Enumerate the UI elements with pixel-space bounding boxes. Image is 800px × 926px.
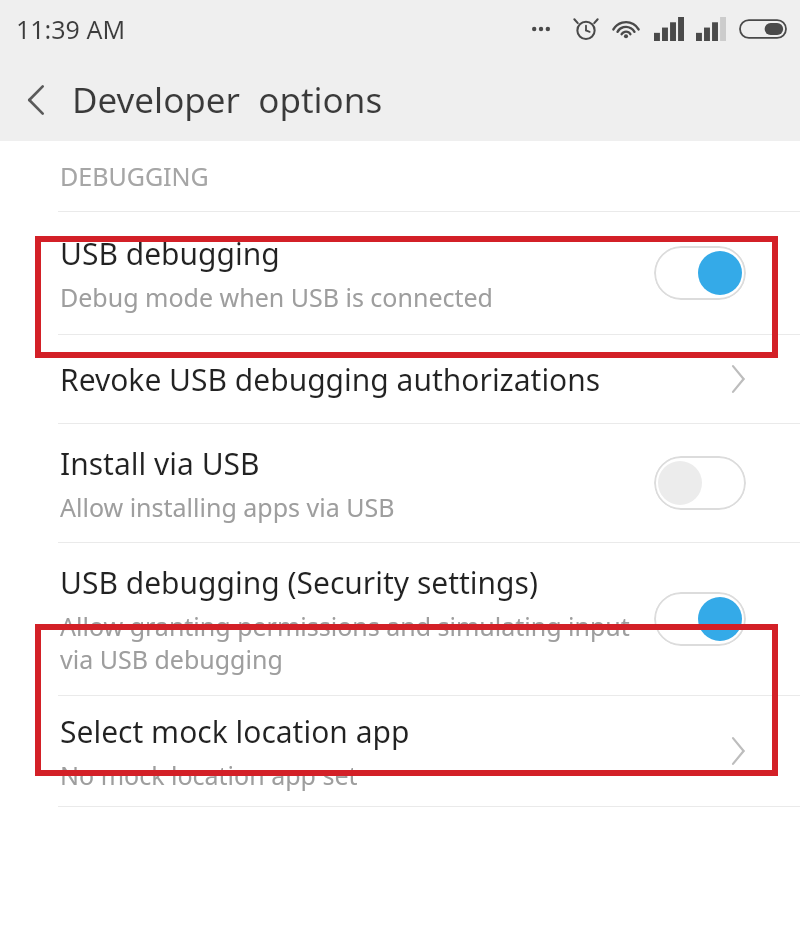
button[interactable]: Off bbox=[654, 456, 746, 510]
staticText: Allow installing apps via USB bbox=[60, 490, 395, 524]
button[interactable]: Back bbox=[0, 58, 72, 141]
other: Open bbox=[724, 729, 752, 773]
staticText: USB debugging (Security settings) bbox=[60, 562, 538, 603]
button[interactable]: Install via USB bbox=[0, 424, 800, 542]
staticText: Developer options bbox=[72, 76, 383, 124]
button[interactable]: On bbox=[654, 246, 746, 300]
staticText: No mock location app set bbox=[60, 758, 358, 792]
staticText: Revoke USB debugging authorizations bbox=[60, 359, 601, 400]
button[interactable]: USB debugging (Security settings) bbox=[0, 543, 800, 695]
staticText: 11:39 AM bbox=[16, 12, 126, 46]
button[interactable]: Revoke USB debugging authorizations bbox=[0, 335, 800, 423]
button[interactable]: USB debugging bbox=[0, 212, 800, 334]
staticText: USB debugging bbox=[60, 233, 280, 274]
button[interactable]: Select mock location app bbox=[0, 696, 800, 806]
staticText: Allow granting permissions and simulatin… bbox=[60, 609, 630, 676]
staticText: Debug mode when USB is connected bbox=[60, 280, 493, 314]
staticText: DEBUGGING bbox=[60, 159, 209, 193]
staticText: Install via USB bbox=[60, 443, 260, 484]
staticText: Select mock location app bbox=[60, 711, 410, 752]
button[interactable]: On bbox=[654, 592, 746, 646]
other: Open bbox=[724, 357, 752, 401]
